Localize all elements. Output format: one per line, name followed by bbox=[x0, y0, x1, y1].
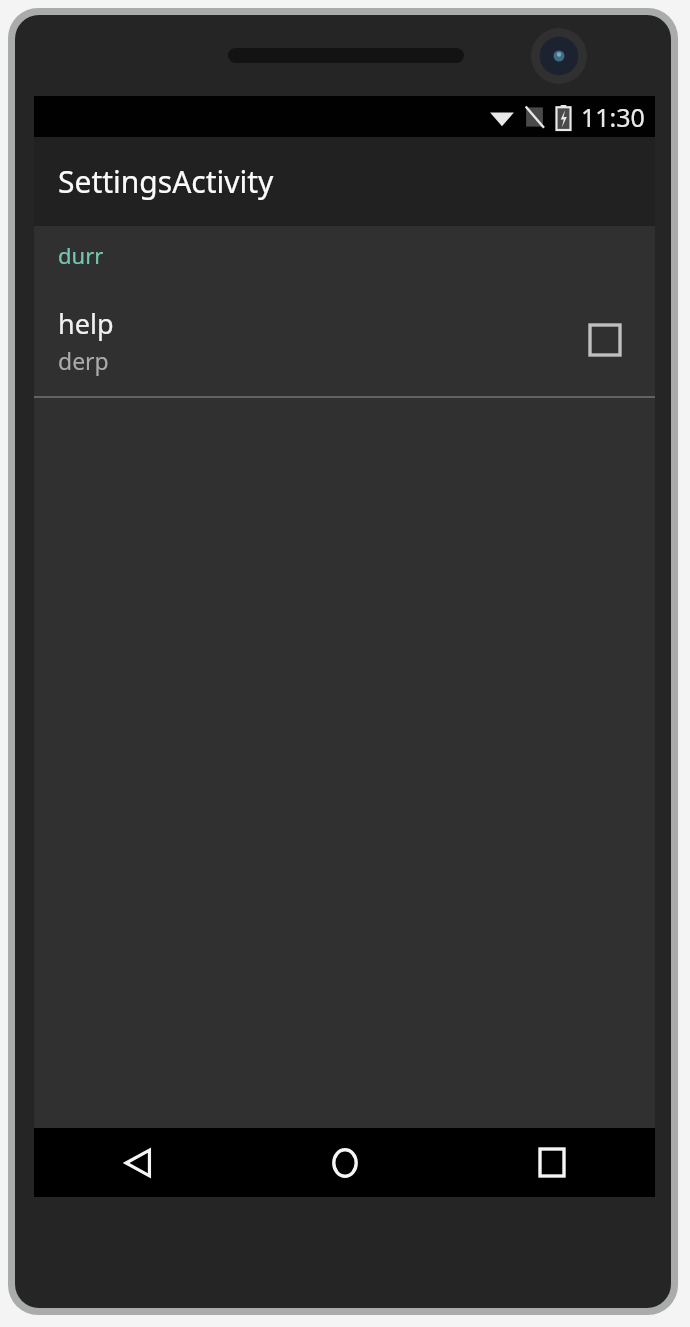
staticText: SettingsActivity bbox=[58, 161, 274, 202]
button[interactable]: help checkbox bbox=[585, 320, 625, 360]
button[interactable]: Back bbox=[34, 1128, 241, 1197]
staticText: derp bbox=[58, 345, 109, 376]
button[interactable]: Home bbox=[241, 1128, 448, 1197]
button[interactable]: Recents bbox=[448, 1128, 655, 1197]
button[interactable]: help bbox=[34, 284, 655, 396]
staticText: help bbox=[58, 305, 114, 342]
staticText: durr bbox=[58, 240, 104, 270]
staticText: 11:30 bbox=[581, 100, 645, 134]
